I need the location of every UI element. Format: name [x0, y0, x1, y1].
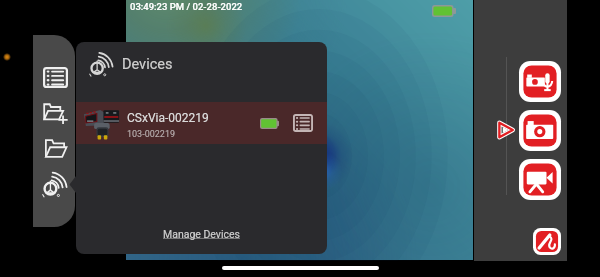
button[interactable]: Open folder: [33, 131, 75, 165]
button[interactable]: CSxVia-002219: [76, 102, 327, 144]
button[interactable]: Manage Devices: [163, 228, 240, 240]
button[interactable]: Annotate: [533, 228, 561, 255]
button[interactable]: Devices: [76, 42, 327, 102]
button[interactable]: New folder: [33, 96, 75, 130]
staticText: 103-002219: [127, 129, 176, 140]
staticText: CSxVia-002219: [127, 111, 209, 125]
button[interactable]: Play: [497, 121, 514, 139]
button[interactable]: Take photo: [519, 110, 561, 151]
staticText: Devices: [122, 56, 173, 73]
button[interactable]: List: [33, 60, 75, 94]
staticText: 03:49:23 PM / 02-28-2022: [130, 1, 243, 12]
button[interactable]: Device details: [293, 114, 313, 132]
button[interactable]: Devices: [33, 167, 75, 201]
button[interactable]: Record video: [519, 159, 561, 200]
button[interactable]: Photo with audio: [519, 61, 561, 102]
